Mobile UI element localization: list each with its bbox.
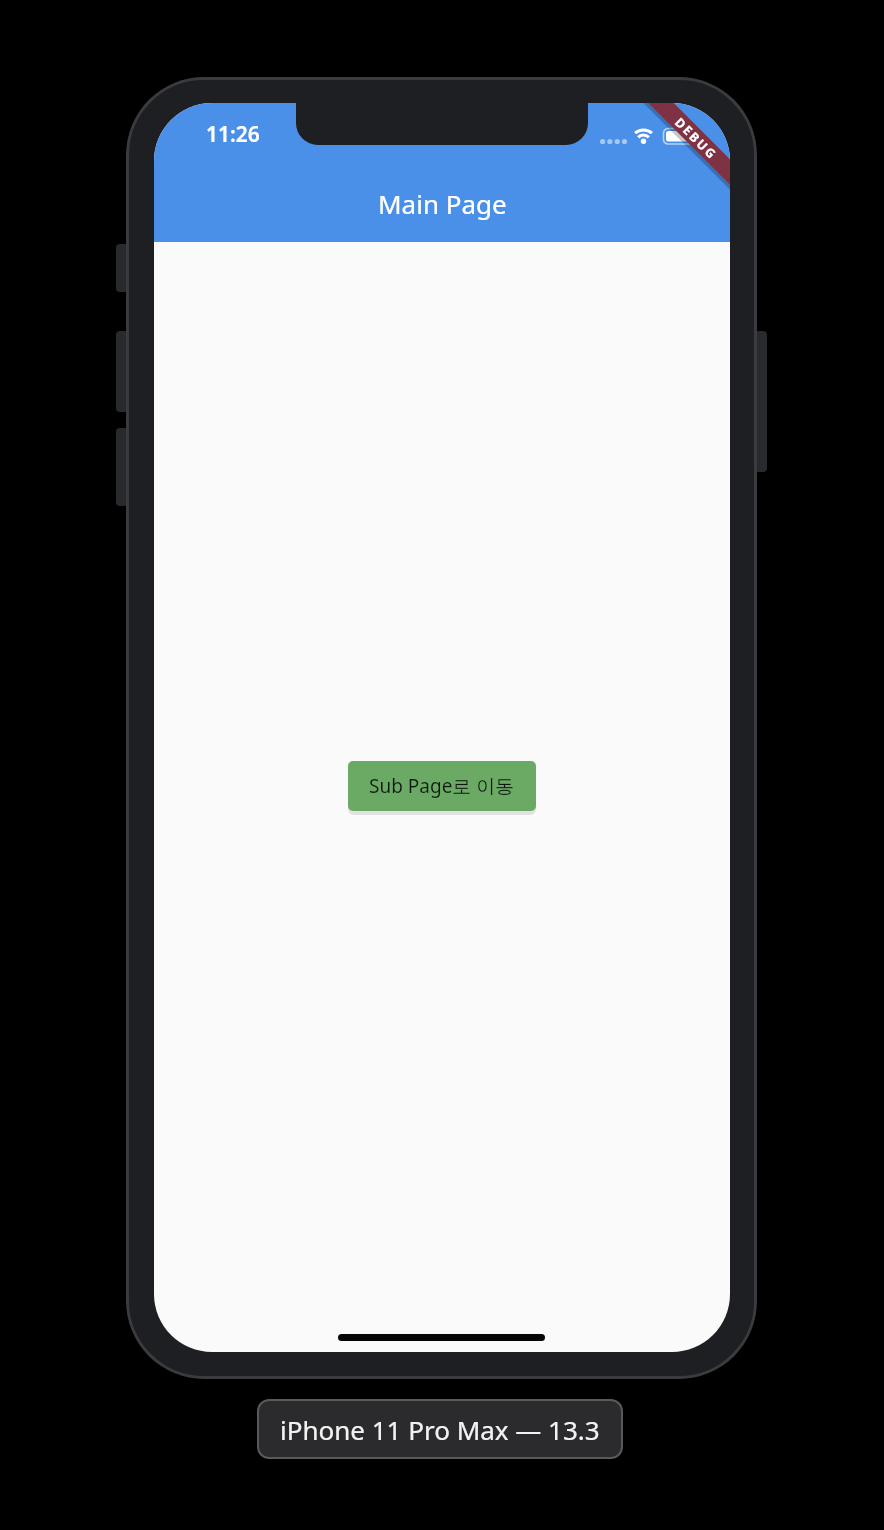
staticText: Main Page — [378, 186, 507, 221]
staticText: Sub Page로 이동 — [369, 773, 515, 799]
button[interactable]: iPhone 11 Pro Max — 13.3 — [257, 1399, 623, 1459]
staticText: iPhone 11 Pro Max — 13.3 — [280, 1412, 600, 1447]
staticText: DEBUG — [671, 114, 721, 163]
staticText: 11:26 — [206, 120, 260, 149]
button[interactable]: Sub Page로 이동 — [348, 761, 536, 811]
